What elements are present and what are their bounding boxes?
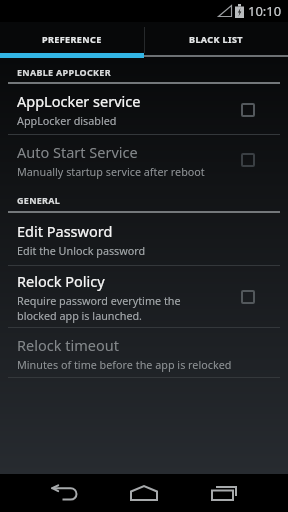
button[interactable]: PREFERENCE [0, 22, 144, 58]
staticText: Relock Policy [17, 271, 105, 291]
button[interactable]: Relock timeout [0, 328, 288, 378]
staticText: AppLocker disabled [17, 113, 117, 128]
staticText: Require password everytime the [17, 293, 181, 308]
staticText: AppLocker service [17, 91, 141, 111]
staticText: Auto Start Service [17, 142, 138, 162]
button[interactable]: BLACK LIST [144, 22, 288, 58]
staticText: Relock timeout [17, 335, 119, 355]
staticText: Edit the Unlock password [17, 243, 146, 258]
staticText: blocked app is launched. [17, 308, 143, 323]
button[interactable]: Edit Password [0, 213, 288, 266]
button[interactable] [24, 474, 104, 512]
staticText: GENERAL [17, 194, 61, 206]
staticText: 10:10 [248, 2, 282, 20]
staticText: BLACK LIST [189, 33, 243, 45]
staticText: ENABLE APPLOCKER [17, 66, 111, 78]
staticText: Minutes of time before the app is relock… [17, 357, 232, 372]
staticText: Manually startup service after reboot [17, 164, 205, 179]
staticText: PREFERENCE [42, 33, 102, 45]
button[interactable]: Relock Policy [0, 266, 288, 328]
button[interactable]: Auto Start Service [0, 135, 288, 185]
button[interactable] [184, 474, 264, 512]
staticText: Edit Password [17, 221, 113, 241]
button[interactable] [104, 474, 184, 512]
button[interactable]: AppLocker service [0, 84, 288, 135]
